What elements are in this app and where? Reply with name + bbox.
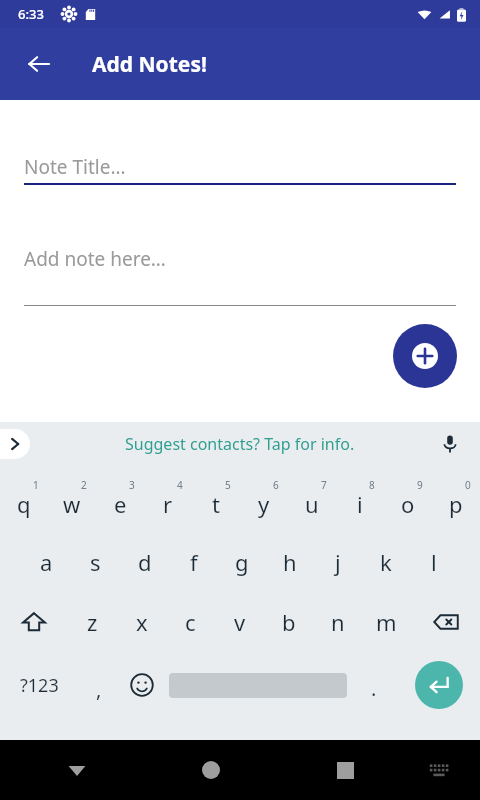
staticText: y [258,489,270,519]
button[interactable]: o [384,470,432,532]
staticText: m [376,607,397,637]
staticText: Add note here… [24,246,166,272]
staticText: g [235,547,249,577]
button[interactable]: e [96,470,144,532]
button[interactable]: d [120,532,169,592]
staticText: u [305,489,319,519]
staticText: 0 [465,478,471,492]
staticText: 1 [33,478,39,492]
staticText: 4 [177,478,183,492]
button[interactable]: Add note here… [24,240,456,278]
button[interactable]: Recent apps [321,746,369,794]
staticText: 3 [129,478,135,492]
button[interactable]: b [264,592,313,652]
staticText: s [90,547,101,577]
button[interactable]: Note Title… [24,148,456,186]
staticText: 5 [225,478,231,492]
button[interactable]: z [68,592,117,652]
button[interactable]: l [410,532,458,592]
staticText: Add Notes! [92,50,207,79]
button[interactable]: Home [187,746,235,794]
button[interactable]: n [313,592,362,652]
button[interactable]: h [266,532,314,592]
staticText: a [40,547,53,577]
button[interactable]: m [362,592,411,652]
staticText: 6 [273,478,279,492]
staticText: q [17,489,31,519]
button[interactable]: Add note [393,324,457,388]
button[interactable]: u [288,470,336,532]
button[interactable]: w [48,470,96,532]
staticText: p [449,489,463,519]
button[interactable]: Backspace [411,592,480,652]
button[interactable]: v [215,592,264,652]
button[interactable]: y [240,470,288,532]
staticText: d [138,547,152,577]
button[interactable]: k [362,532,410,592]
button[interactable]: , [78,652,119,718]
staticText: 8 [369,478,375,492]
staticText: t [212,489,220,519]
staticText: k [380,547,392,577]
staticText: Note Title… [24,154,126,180]
staticText: Suggest contacts? Tap for info. [125,433,355,455]
staticText: 9 [417,478,423,492]
staticText: 6:33 [18,5,44,23]
button[interactable]: Expand suggestions [0,429,30,459]
button[interactable]: c [166,592,215,652]
button[interactable]: f [169,532,218,592]
staticText: e [114,489,127,519]
staticText: o [401,489,415,519]
button[interactable]: g [218,532,266,592]
button[interactable]: ?123 [0,652,78,718]
staticText: b [282,607,296,637]
button[interactable]: Enter [415,661,463,709]
staticText: j [335,547,341,577]
staticText: v [234,607,246,637]
staticText: c [185,607,196,637]
staticText: z [87,607,98,637]
button[interactable]: a [22,532,71,592]
button[interactable]: s [71,532,120,592]
button[interactable]: i [336,470,384,532]
button[interactable]: Shift [0,592,68,652]
staticText: n [331,607,345,637]
staticText: r [163,489,173,519]
button[interactable]: Back [53,746,101,794]
button[interactable]: t [192,470,240,532]
button[interactable]: Switch keyboard [417,748,461,792]
staticText: f [190,547,198,577]
staticText: 7 [321,478,327,492]
button[interactable]: . [351,652,397,718]
staticText: l [431,547,437,577]
staticText: , [96,676,102,703]
staticText: h [283,547,297,577]
staticText: w [63,489,81,519]
button[interactable]: p [432,470,480,532]
staticText: . [371,675,377,702]
button[interactable]: Back [18,43,60,85]
staticText: x [136,607,148,637]
staticText: i [357,489,363,519]
button[interactable]: Emoji [119,652,165,718]
staticText: ?123 [20,673,59,698]
button[interactable]: x [117,592,166,652]
button[interactable]: Voice input [434,428,466,460]
button[interactable]: r [144,470,192,532]
button[interactable]: Space [165,652,351,718]
button[interactable]: Suggest contacts? Tap for info. [125,433,355,455]
button[interactable]: q [0,470,48,532]
button[interactable]: j [314,532,362,592]
staticText: 2 [81,478,87,492]
